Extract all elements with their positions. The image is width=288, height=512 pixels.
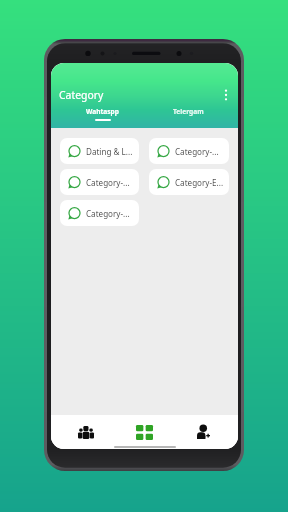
button[interactable]: More options <box>214 83 238 107</box>
staticText: Category-E... <box>175 177 224 188</box>
staticText: Wahtaspp <box>86 107 119 116</box>
staticText: Category-... <box>86 208 130 219</box>
button[interactable]: Categories <box>115 415 174 449</box>
staticText: Category-... <box>175 146 219 157</box>
button[interactable]: Category-... <box>60 169 139 195</box>
staticText: Telergam <box>173 107 204 116</box>
button[interactable]: Wahtaspp <box>77 107 127 129</box>
button[interactable]: Category-... <box>60 200 139 226</box>
button[interactable]: Dating & L... <box>60 138 139 164</box>
button[interactable]: Telergam <box>163 107 213 129</box>
button[interactable]: Add contact <box>174 415 233 449</box>
staticText: Dating & L... <box>86 146 133 157</box>
button[interactable]: Category-E... <box>149 169 229 195</box>
staticText: Category <box>59 88 214 102</box>
button[interactable]: Category-... <box>149 138 229 164</box>
staticText: Category-... <box>86 177 130 188</box>
button[interactable]: Groups <box>56 415 115 449</box>
